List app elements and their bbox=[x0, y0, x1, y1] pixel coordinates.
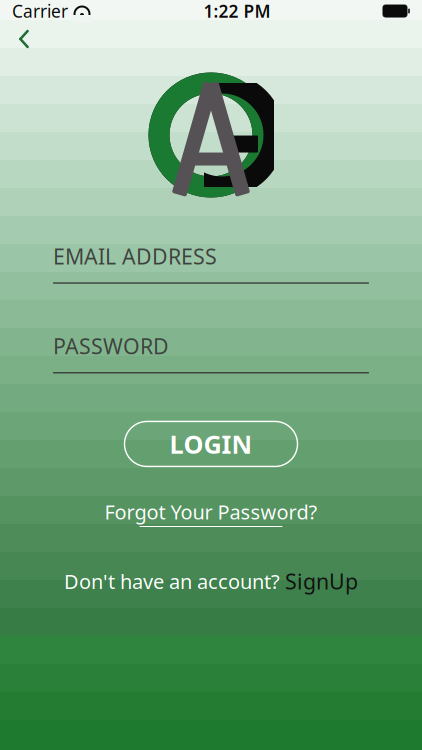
staticText: Carrier bbox=[12, 0, 68, 22]
button[interactable]: SignUp bbox=[285, 567, 358, 595]
staticText: PASSWORD bbox=[53, 332, 169, 360]
staticText: SignUp bbox=[285, 567, 358, 595]
staticText: EMAIL ADDRESS bbox=[53, 242, 217, 270]
staticText: LOGIN bbox=[169, 427, 252, 461]
button[interactable]: LOGIN bbox=[124, 421, 297, 466]
staticText: 1:22 PM bbox=[203, 0, 270, 22]
button[interactable]: Forgot Your Password? bbox=[98, 496, 323, 529]
staticText: Forgot Your Password? bbox=[104, 498, 317, 525]
button[interactable]: Back bbox=[2, 22, 46, 56]
staticText: Don't have an account? bbox=[64, 568, 280, 594]
